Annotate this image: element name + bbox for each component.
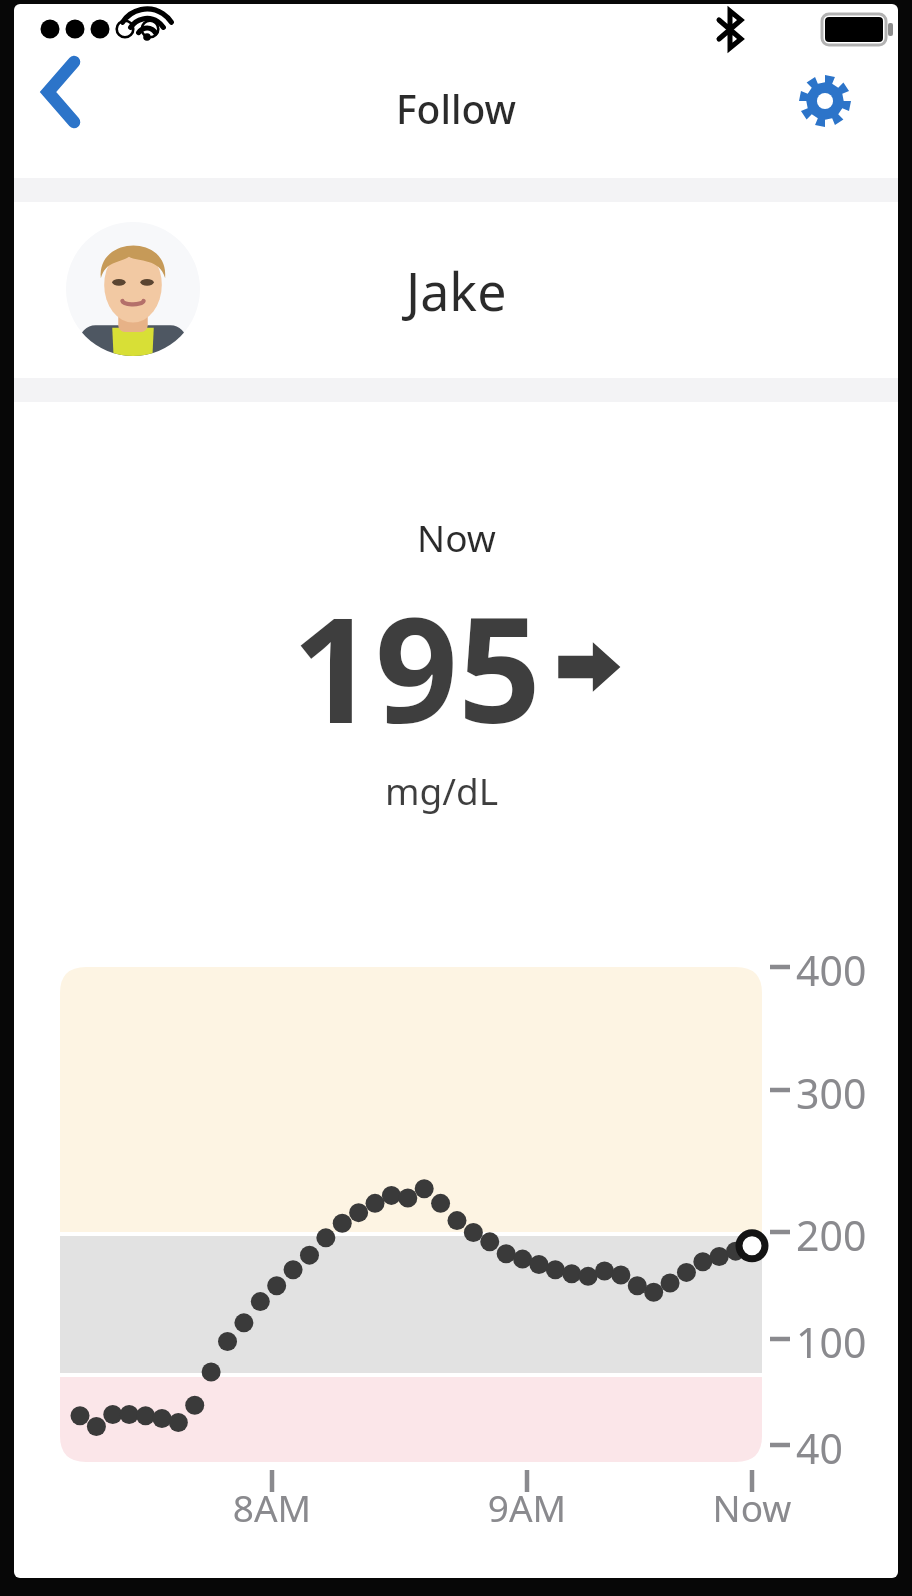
staticText: 8AM bbox=[212, 1482, 332, 1532]
staticText: Follow bbox=[396, 82, 517, 135]
staticText: Jake bbox=[406, 255, 507, 326]
staticText: 400 bbox=[796, 942, 867, 998]
button[interactable]: Jake bbox=[14, 202, 898, 378]
button[interactable]: Settings bbox=[790, 66, 860, 136]
staticText: 200 bbox=[796, 1207, 867, 1263]
button[interactable]: Back bbox=[20, 54, 96, 130]
staticText: 40 bbox=[796, 1420, 843, 1476]
staticText: 9AM bbox=[467, 1482, 587, 1532]
staticText: 195 bbox=[292, 568, 541, 765]
staticText: 100 bbox=[796, 1314, 867, 1370]
staticText: mg/dL bbox=[385, 765, 499, 815]
staticText: Now bbox=[692, 1482, 812, 1532]
button[interactable]: Glucose trend graph bbox=[14, 4, 898, 1578]
staticText: Now bbox=[417, 512, 496, 562]
staticText: 300 bbox=[796, 1065, 867, 1121]
